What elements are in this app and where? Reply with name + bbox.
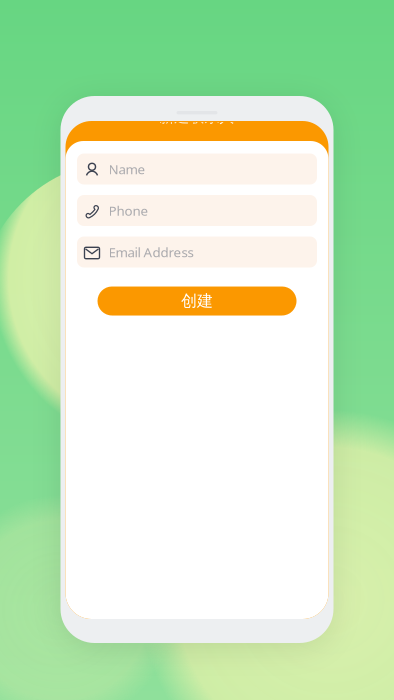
staticText: Name	[108, 160, 145, 178]
button[interactable]: 创建	[97, 286, 296, 315]
button[interactable]: Name	[77, 153, 317, 184]
staticText: Email Address	[108, 243, 193, 261]
staticText: Phone	[108, 202, 148, 219]
staticText: 创建	[181, 291, 213, 311]
staticText: 新建联系人	[159, 108, 234, 126]
button[interactable]: Email Address	[77, 236, 317, 267]
button[interactable]: Phone	[77, 195, 317, 226]
